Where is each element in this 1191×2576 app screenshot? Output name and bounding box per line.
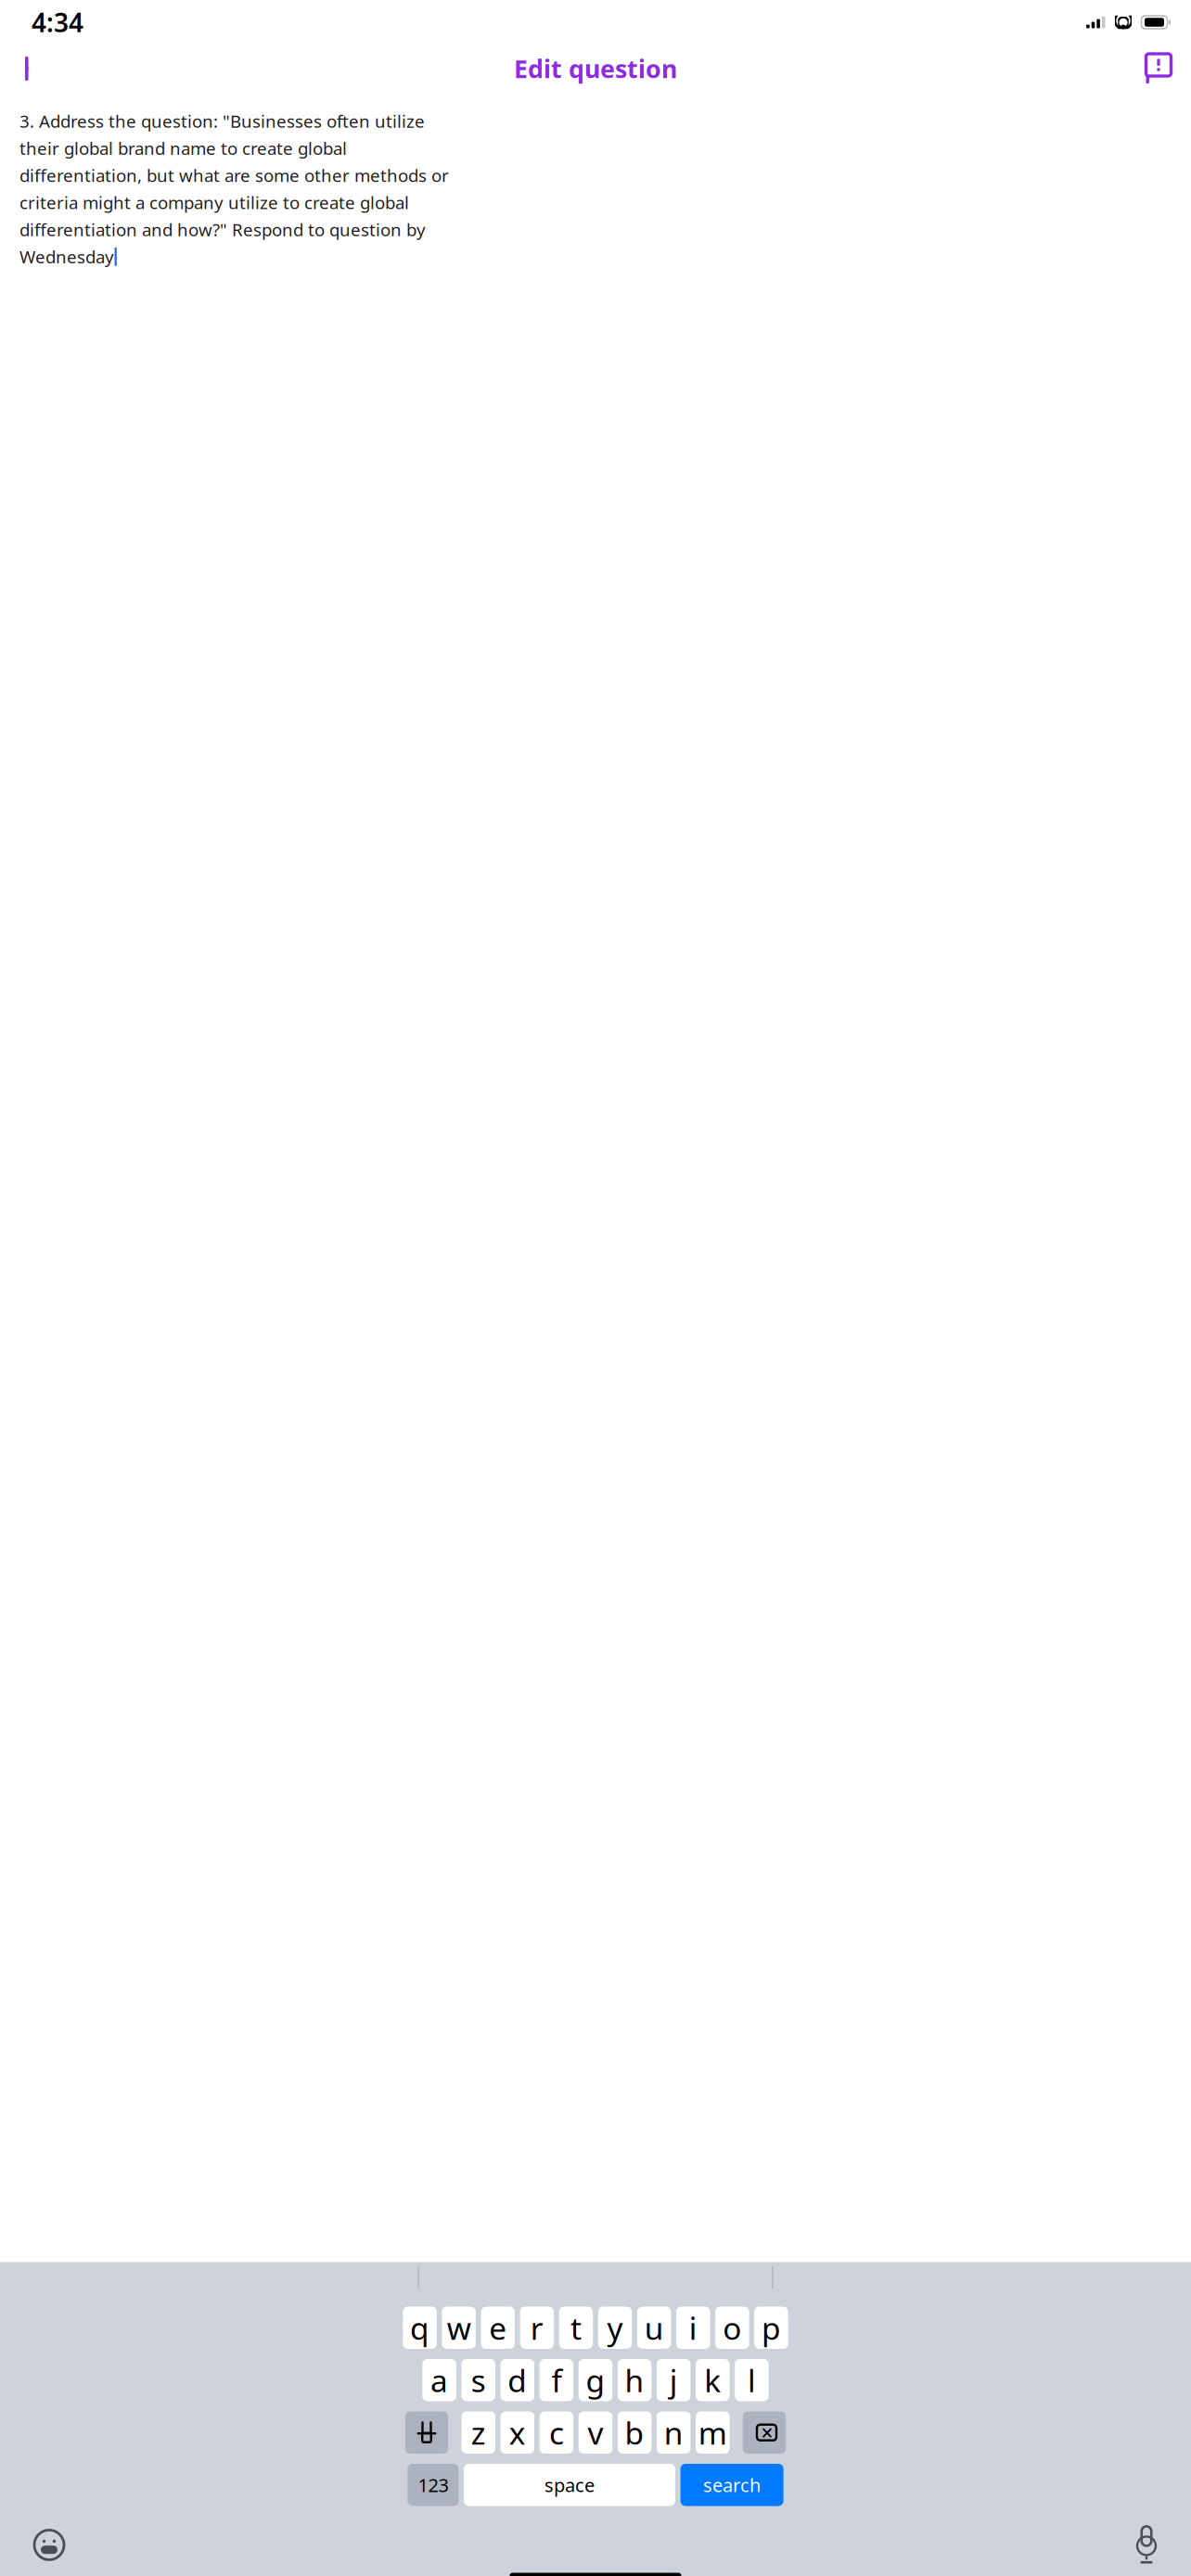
staticText: their global brand name to create global (19, 137, 347, 160)
button[interactable]: g (579, 2359, 612, 2401)
staticText: i (689, 2307, 697, 2348)
button[interactable]: 123 (408, 2464, 459, 2506)
staticText: b (625, 2412, 644, 2453)
staticText: differentiation, but what are some other… (19, 164, 449, 187)
staticText: o (723, 2307, 741, 2348)
button[interactable]: m (696, 2411, 730, 2454)
staticText: q (410, 2307, 430, 2348)
button[interactable]: w (442, 2307, 476, 2349)
button[interactable]: Dictation (1127, 2526, 1166, 2563)
staticText: h (625, 2360, 644, 2401)
staticText: t (570, 2307, 582, 2348)
staticText: u (644, 2307, 664, 2348)
button[interactable]: j (657, 2359, 691, 2401)
staticText: 3. Address the question: "Businesses oft… (19, 109, 425, 132)
button[interactable]: k (696, 2359, 730, 2401)
button[interactable]: b (618, 2411, 652, 2454)
button[interactable]: u (637, 2307, 671, 2349)
button[interactable]: f (540, 2359, 573, 2401)
button[interactable]: a (422, 2359, 456, 2401)
button[interactable]: d (501, 2359, 534, 2401)
button[interactable]: Report a problem (1132, 47, 1185, 90)
button[interactable]: c (539, 2411, 573, 2454)
button[interactable]: s (461, 2359, 495, 2401)
staticText: j (669, 2360, 678, 2401)
button[interactable]: Delete (743, 2411, 786, 2454)
staticText: m (698, 2412, 727, 2453)
staticText: l (748, 2360, 756, 2401)
button[interactable]: p (754, 2307, 788, 2349)
staticText: d (508, 2360, 527, 2401)
staticText: k (704, 2360, 721, 2401)
staticText: v (588, 2412, 603, 2453)
staticText: x (509, 2412, 526, 2453)
button[interactable]: z (461, 2411, 495, 2454)
button[interactable]: e (481, 2307, 515, 2349)
staticText: w (447, 2307, 471, 2348)
button[interactable]: t (559, 2307, 593, 2349)
staticText: space (544, 2473, 595, 2497)
staticText: r (530, 2307, 543, 2348)
staticText: a (430, 2360, 448, 2401)
staticText: Wednesday (19, 245, 114, 268)
staticText: s (471, 2360, 486, 2401)
button[interactable]: space (464, 2464, 675, 2506)
staticText: c (549, 2412, 564, 2453)
button[interactable]: n (657, 2411, 691, 2454)
button[interactable]: q (403, 2307, 437, 2349)
staticText: p (762, 2307, 781, 2348)
button[interactable]: i (676, 2307, 710, 2349)
staticText: 4:34 (32, 5, 83, 40)
staticText: e (489, 2307, 507, 2348)
button[interactable]: r (520, 2307, 554, 2349)
staticText: Edit question (514, 52, 677, 85)
button[interactable]: Back (6, 47, 52, 90)
staticText: y (607, 2307, 623, 2348)
staticText: × (761, 2419, 773, 2446)
button[interactable]: y (598, 2307, 632, 2349)
button[interactable]: h (618, 2359, 652, 2401)
button[interactable]: Emoji (25, 2521, 73, 2569)
staticText: g (586, 2360, 605, 2401)
staticText: f (551, 2360, 562, 2401)
button[interactable]: x (500, 2411, 534, 2454)
staticText: search (703, 2473, 761, 2497)
staticText: 123 (418, 2473, 448, 2497)
button[interactable]: search (680, 2464, 783, 2506)
staticText: criteria might a company utilize to crea… (19, 191, 409, 214)
staticText: n (664, 2412, 683, 2453)
staticText: differentiation and how?" Respond to que… (19, 218, 426, 241)
button[interactable]: v (579, 2411, 612, 2454)
staticText: z (471, 2412, 486, 2453)
button[interactable]: Shift (405, 2411, 448, 2454)
button[interactable]: o (715, 2307, 749, 2349)
button[interactable]: l (735, 2359, 769, 2401)
